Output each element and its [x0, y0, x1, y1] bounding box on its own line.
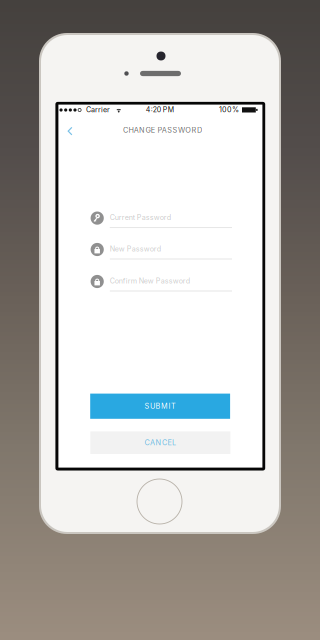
- staticText: 4:20 PM: [146, 105, 174, 114]
- button[interactable]: Current Password: [58, 105, 262, 468]
- button[interactable]: Back: [59, 121, 80, 141]
- staticText: CANCEL: [145, 438, 176, 447]
- staticText: CHANGE PASSWORD: [123, 126, 202, 135]
- staticText: SUBMIT: [144, 402, 176, 411]
- staticText: Carrier: [86, 105, 110, 114]
- button[interactable]: Confirm New Password: [58, 105, 262, 468]
- staticText: Current Password: [110, 213, 171, 222]
- staticText: 100%: [219, 105, 239, 114]
- staticText: Confirm New Password: [110, 276, 190, 285]
- button[interactable]: CANCEL: [90, 431, 230, 454]
- button[interactable]: New Password: [58, 105, 262, 468]
- staticText: New Password: [110, 244, 161, 253]
- button[interactable]: SUBMIT: [90, 394, 230, 419]
